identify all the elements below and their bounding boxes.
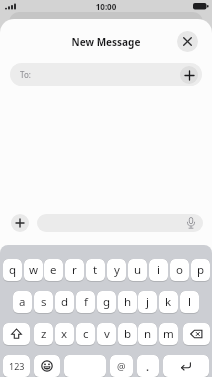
button[interactable]	[177, 31, 198, 52]
staticText: c	[83, 326, 89, 342]
staticText: o	[176, 262, 183, 278]
button[interactable]: m	[159, 323, 178, 346]
button[interactable]: u	[128, 259, 147, 282]
staticText: f	[84, 294, 88, 310]
staticText: e	[50, 262, 57, 278]
button[interactable]: g	[97, 291, 116, 314]
button[interactable]: h	[118, 291, 137, 314]
button[interactable]: i	[149, 259, 168, 282]
button[interactable]	[183, 323, 210, 346]
staticText: .	[146, 359, 150, 374]
button[interactable]: o	[170, 259, 189, 282]
button[interactable]	[64, 355, 106, 377]
button[interactable]: w	[24, 259, 43, 282]
staticText: r	[72, 262, 77, 278]
button[interactable]: d	[55, 291, 74, 314]
button[interactable]: b	[118, 323, 137, 346]
button[interactable]: l	[180, 291, 199, 314]
staticText: l	[188, 294, 191, 310]
staticText: w	[29, 262, 39, 278]
button[interactable]: p	[191, 259, 210, 282]
staticText: s	[41, 294, 47, 310]
button[interactable]: y	[107, 259, 126, 282]
button[interactable]: x	[55, 323, 74, 346]
staticText: g	[103, 294, 111, 310]
button[interactable]: s	[34, 291, 53, 314]
staticText: i	[157, 262, 160, 278]
button[interactable]: r	[65, 259, 84, 282]
staticText: New Message	[0, 35, 212, 49]
button[interactable]: v	[97, 323, 116, 346]
button[interactable]: @	[110, 355, 133, 377]
staticText: 10:00	[0, 1, 212, 12]
staticText: z	[41, 326, 47, 342]
staticText: 123	[9, 360, 25, 372]
button[interactable]: n	[138, 323, 157, 346]
button[interactable]: q	[3, 259, 22, 282]
staticText: x	[61, 326, 68, 342]
button[interactable]	[37, 214, 203, 232]
staticText: k	[165, 294, 172, 310]
staticText: u	[134, 262, 142, 278]
staticText: y	[114, 262, 120, 278]
staticText: @	[117, 360, 126, 373]
button[interactable]	[34, 355, 60, 377]
staticText: m	[163, 326, 174, 342]
staticText: v	[104, 326, 110, 342]
button[interactable]: f	[76, 291, 95, 314]
button[interactable]	[163, 355, 209, 377]
staticText: n	[144, 326, 152, 342]
button[interactable]: c	[76, 323, 95, 346]
button[interactable]: k	[159, 291, 178, 314]
staticText: p	[197, 262, 205, 278]
staticText: t	[93, 262, 98, 278]
button[interactable]: a	[13, 291, 32, 314]
staticText: h	[124, 294, 132, 310]
staticText: q	[9, 262, 17, 278]
button[interactable]: 123	[3, 355, 30, 377]
staticText: a	[19, 294, 26, 310]
button[interactable]: z	[34, 323, 53, 346]
staticText: j	[146, 294, 149, 310]
staticText: To:	[20, 69, 31, 80]
button[interactable]: To:	[10, 63, 202, 86]
button[interactable]: t	[86, 259, 105, 282]
button[interactable]	[11, 214, 29, 232]
staticText: b	[124, 326, 132, 342]
button[interactable]: .	[137, 355, 159, 377]
button[interactable]	[3, 323, 30, 346]
button[interactable]: e	[44, 259, 63, 282]
button[interactable]: j	[138, 291, 157, 314]
button[interactable]	[180, 66, 198, 84]
staticText: d	[61, 294, 69, 310]
